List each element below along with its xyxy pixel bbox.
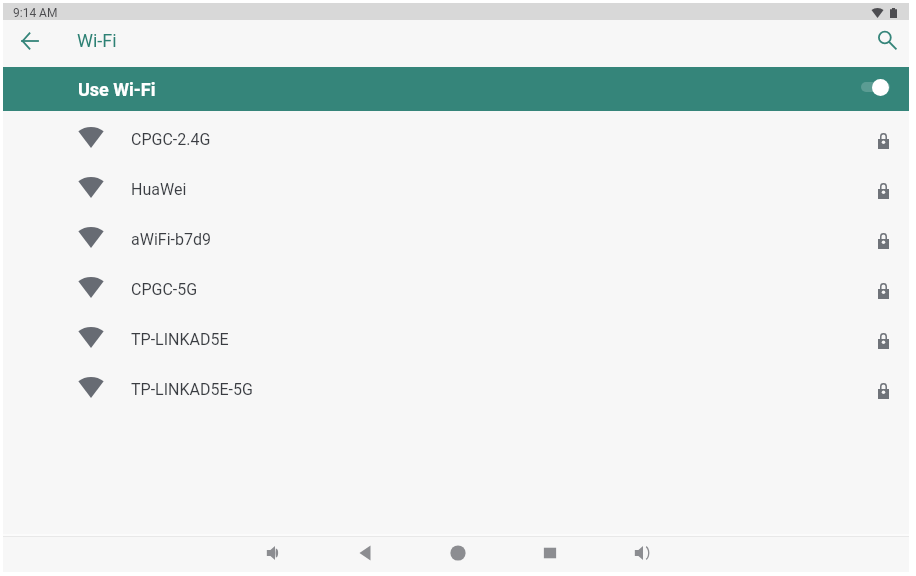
- button[interactable]: Volume down: [260, 538, 290, 568]
- button[interactable]: Back: [12, 23, 48, 59]
- staticText: CPGC-5G: [131, 280, 198, 299]
- button[interactable]: Home: [443, 538, 473, 568]
- staticText: 9:14 AM: [13, 6, 58, 20]
- button[interactable]: Use Wi-Fi: [3, 67, 909, 111]
- staticText: TP-LINKAD5E-5G: [131, 380, 253, 399]
- button[interactable]: Recent apps: [535, 538, 565, 568]
- staticText: HuaWei: [131, 180, 187, 199]
- button[interactable]: Use Wi-Fi toggle: [853, 72, 897, 106]
- button[interactable]: CPGC-5G: [3, 264, 909, 314]
- button[interactable]: Volume up: [628, 538, 658, 568]
- button[interactable]: TP-LINKAD5E-5G: [3, 364, 909, 414]
- button[interactable]: TP-LINKAD5E: [3, 314, 909, 364]
- button[interactable]: CPGC-2.4G: [3, 114, 909, 164]
- staticText: aWiFi-b7d9: [131, 230, 211, 249]
- button[interactable]: Back: [350, 538, 380, 568]
- button[interactable]: Search: [869, 22, 905, 58]
- staticText: TP-LINKAD5E: [131, 330, 229, 349]
- button[interactable]: HuaWei: [3, 164, 909, 214]
- staticText: CPGC-2.4G: [131, 130, 211, 149]
- staticText: Wi-Fi: [77, 30, 117, 51]
- staticText: Use Wi-Fi: [78, 79, 156, 100]
- button[interactable]: aWiFi-b7d9: [3, 214, 909, 264]
